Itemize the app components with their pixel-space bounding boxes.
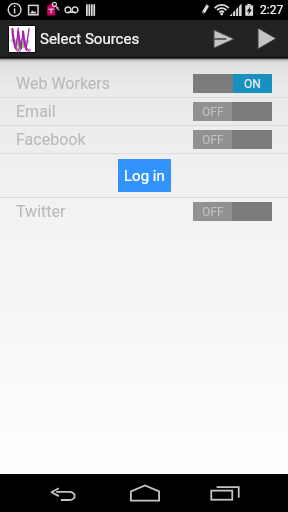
staticText: Email: [16, 102, 56, 121]
button[interactable]: Email: [0, 98, 288, 125]
staticText: OFF: [202, 105, 224, 119]
button[interactable]: Send: [202, 20, 245, 57]
button[interactable]: Back: [37, 474, 91, 512]
staticText: Log in: [124, 167, 165, 185]
staticText: Select Sources: [40, 30, 140, 48]
button[interactable]: Log in: [118, 159, 171, 192]
staticText: ON: [244, 77, 261, 91]
staticText: OFF: [202, 205, 224, 219]
button[interactable]: Twitter: [0, 198, 288, 225]
staticText: Facebook: [16, 130, 86, 149]
staticText: Twitter: [16, 202, 66, 221]
staticText: Web Workers: [16, 74, 111, 93]
button[interactable]: Web Workers: [0, 70, 288, 97]
staticText: OFF: [202, 133, 224, 147]
button[interactable]: Play: [245, 20, 288, 57]
button[interactable]: Home: [118, 474, 172, 512]
button[interactable]: Facebook: [0, 126, 288, 153]
button[interactable]: Recents: [198, 474, 252, 512]
staticText: 2:27: [260, 3, 284, 17]
